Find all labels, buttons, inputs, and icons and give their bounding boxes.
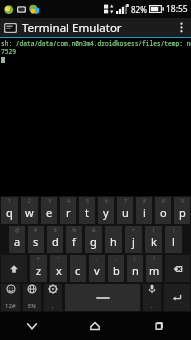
button[interactable]: sh: /data/data/com.n0n3m4.droidkosess/fi…: [0, 38, 191, 196]
staticText: 2: [28, 198, 31, 205]
staticText: b: [113, 263, 120, 278]
staticText: 82%: [131, 4, 147, 15]
staticText: 3: [48, 198, 51, 205]
staticText: ": [57, 256, 60, 263]
staticText: 18:55: [166, 3, 188, 15]
staticText: a: [14, 234, 21, 249]
button[interactable]: 2: [21, 197, 38, 224]
button[interactable]: 1: [1, 197, 18, 224]
staticText: 7: [124, 198, 127, 205]
staticText: EN: [28, 302, 36, 310]
button[interactable]: ): [165, 226, 182, 253]
staticText: sh: /data/data/com.n0n3m4.droidkosess/fi…: [1, 39, 191, 47]
button[interactable]: Back: [0, 312, 63, 340]
staticText: s: [33, 234, 39, 249]
button[interactable]: #: [28, 226, 44, 253]
staticText: $: [54, 227, 57, 234]
staticText: k: [151, 234, 157, 249]
button[interactable]: 5: [79, 197, 95, 224]
staticText: 4: [67, 198, 70, 205]
staticText: o: [160, 205, 167, 220]
staticText: d: [52, 234, 59, 249]
button[interactable]: ,: [44, 284, 62, 311]
staticText: -: [113, 227, 115, 234]
staticText: x: [56, 263, 62, 278]
button[interactable]: More options: [171, 18, 191, 37]
button[interactable]: *: [30, 255, 47, 282]
button[interactable]: +: [125, 226, 142, 253]
staticText: 6: [105, 198, 108, 205]
button[interactable]: 12#: [1, 284, 20, 311]
button[interactable]: 8: [136, 197, 152, 224]
staticText: n: [132, 263, 139, 278]
button[interactable]: 0: [174, 197, 190, 224]
button[interactable]: :: [89, 255, 105, 282]
staticText: 9: [162, 198, 165, 205]
staticText: l: [172, 234, 175, 249]
staticText: y: [103, 205, 109, 220]
staticText: ': [77, 256, 79, 263]
button[interactable]: Enter: [164, 284, 190, 311]
button[interactable]: $: [47, 226, 63, 253]
staticText: ?: [153, 256, 156, 263]
button[interactable]: Shift: [1, 255, 27, 282]
button[interactable]: .: [143, 284, 161, 311]
staticText: r: [66, 205, 71, 220]
button[interactable]: -: [105, 226, 122, 253]
staticText: h: [110, 234, 117, 249]
staticText: 0: [181, 198, 184, 205]
staticText: q: [6, 205, 13, 220]
staticText: i: [143, 205, 146, 220]
button[interactable]: (: [145, 226, 162, 253]
staticText: (: [153, 227, 155, 234]
staticText: 12#: [5, 302, 16, 310]
staticText: *: [37, 256, 40, 263]
staticText: u: [122, 205, 129, 220]
button[interactable]: @: [9, 226, 25, 253]
staticText: 5: [86, 198, 89, 205]
staticText: ): [173, 227, 175, 234]
staticText: 1: [8, 198, 11, 205]
staticText: +: [132, 227, 135, 234]
staticText: p: [179, 205, 186, 220]
button[interactable]: Backspace: [165, 255, 190, 282]
button[interactable]: %: [66, 226, 82, 253]
button[interactable]: EN: [23, 284, 41, 311]
button[interactable]: ;: [108, 255, 124, 282]
staticText: #: [34, 227, 38, 234]
staticText: %: [72, 227, 77, 234]
staticText: c: [75, 263, 81, 278]
button[interactable]: 4: [60, 197, 76, 224]
button[interactable]: !: [127, 255, 143, 282]
staticText: Terminal Emulator: [22, 20, 122, 36]
staticText: 8: [143, 198, 146, 205]
staticText: ,: [52, 302, 54, 310]
button[interactable]: ": [50, 255, 67, 282]
button[interactable]: ?: [146, 255, 162, 282]
staticText: !: [134, 256, 136, 263]
button[interactable]: 7: [117, 197, 133, 224]
staticText: m: [149, 263, 160, 278]
staticText: v: [94, 263, 100, 278]
staticText: f: [72, 234, 76, 249]
staticText: 7529: [1, 47, 16, 55]
staticText: :: [96, 256, 98, 263]
staticText: j: [132, 234, 135, 249]
button[interactable]: ': [70, 255, 86, 282]
staticText: w: [25, 205, 34, 220]
staticText: .: [151, 302, 153, 310]
staticText: e: [46, 205, 53, 220]
staticText: @: [15, 227, 20, 234]
button[interactable]: Recents: [127, 312, 191, 340]
staticText: ;: [115, 256, 117, 263]
button[interactable]: 3: [41, 197, 57, 224]
button[interactable]: Home: [63, 312, 127, 340]
staticText: t: [85, 205, 89, 220]
staticText: z: [36, 263, 42, 278]
staticText: &: [92, 227, 96, 234]
button[interactable]: 9: [155, 197, 171, 224]
button[interactable]: Space: [65, 284, 140, 311]
button[interactable]: 6: [98, 197, 114, 224]
staticText: g: [90, 234, 97, 249]
button[interactable]: &: [85, 226, 102, 253]
